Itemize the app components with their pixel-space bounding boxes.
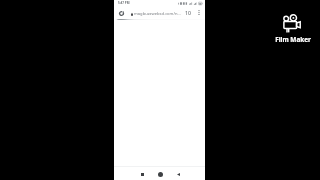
button[interactable]: Reload page (117, 9, 125, 17)
button[interactable]: Switch tabs (183, 8, 192, 17)
staticText: 10 (185, 9, 191, 16)
staticText: 5:47 PM (118, 1, 130, 5)
button[interactable]: Recent apps (137, 169, 147, 179)
staticText: Film Maker (271, 35, 315, 44)
button[interactable]: Home (155, 169, 165, 179)
button[interactable]: Search or type URL (127, 10, 182, 18)
button[interactable]: More options (194, 8, 203, 17)
button[interactable]: Back (173, 169, 183, 179)
staticText: magbuzzwebsd.com/n… (134, 11, 181, 17)
